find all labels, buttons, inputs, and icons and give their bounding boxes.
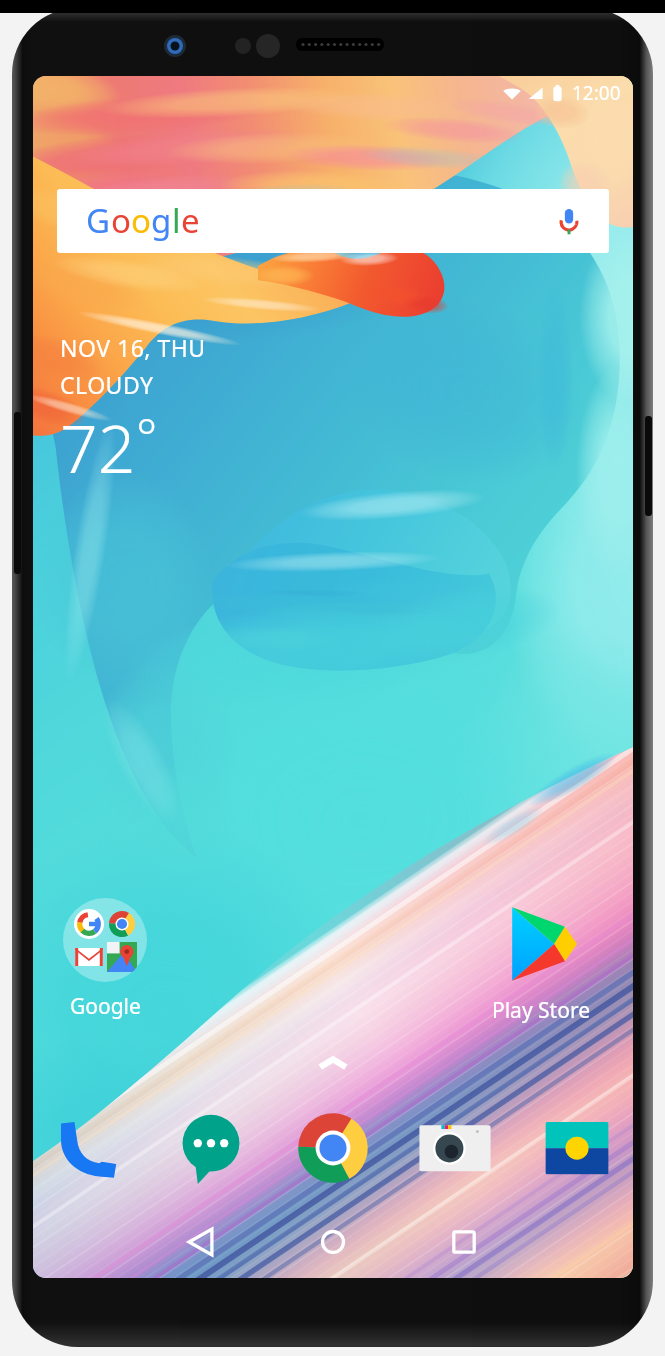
staticText: NOV 16, THU [60,332,206,363]
button[interactable]: Voice search [551,203,587,239]
button[interactable]: Back [172,1212,232,1272]
staticText: o [111,198,131,243]
button[interactable]: Home [303,1212,363,1272]
staticText: CLOUDY [60,369,154,400]
staticText: g [151,198,172,243]
button[interactable]: Recents [434,1212,494,1272]
staticText: Play Store [492,996,590,1025]
button[interactable]: Phone [49,1108,129,1188]
button[interactable]: Camera [415,1108,495,1188]
staticText: o [131,198,151,243]
button[interactable]: Play Store [485,902,597,1025]
staticText: 12:00 [572,80,621,106]
staticText: l [172,198,181,243]
staticText: ° [136,402,158,470]
staticText: G [86,198,111,243]
button[interactable]: NOV 16, THU [60,332,206,490]
staticText: 72 [60,402,136,492]
button[interactable]: G [57,189,609,253]
staticText: e [181,198,200,243]
staticText: Google [70,992,141,1021]
button[interactable]: Gallery [537,1108,617,1188]
button[interactable]: Google [49,898,161,1021]
button[interactable]: Messages [171,1108,251,1188]
button[interactable]: All apps [313,1051,353,1077]
button[interactable]: Chrome [293,1108,373,1188]
